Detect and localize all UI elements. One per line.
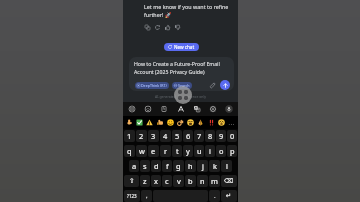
button[interactable]: Search	[172, 82, 192, 89]
staticText: t	[176, 146, 179, 156]
button[interactable]: Settings	[208, 104, 218, 114]
button[interactable]: y	[183, 145, 193, 157]
staticText: ↵	[226, 192, 232, 200]
button[interactable]: m	[209, 175, 220, 187]
button[interactable]: 2	[136, 130, 147, 142]
button[interactable]: u	[194, 145, 204, 157]
button[interactable]: Emoji	[186, 118, 195, 127]
staticText: DeepThink (R1)	[141, 83, 167, 88]
staticText: f	[166, 161, 169, 171]
button[interactable]: Good response	[162, 22, 172, 32]
staticText: x	[154, 176, 158, 186]
button[interactable]: 0	[227, 130, 237, 142]
staticText: q	[127, 146, 132, 156]
staticText: ?123	[127, 193, 137, 199]
button[interactable]: Clipboard	[159, 104, 169, 114]
button[interactable]: f	[162, 160, 172, 172]
button[interactable]: 5	[172, 130, 182, 142]
button[interactable]: c	[162, 175, 172, 187]
button[interactable]: Emoji	[196, 118, 205, 127]
button[interactable]: ↵	[221, 190, 237, 202]
button[interactable]: Copy	[142, 22, 152, 32]
button[interactable]: ,	[141, 190, 152, 202]
button[interactable]: ⇧	[124, 175, 139, 187]
button[interactable]: Emoji	[166, 118, 175, 127]
staticText: 1	[127, 131, 132, 141]
button[interactable]: i	[205, 145, 215, 157]
staticText: Let me know if you want to refine	[144, 3, 229, 10]
staticText: 2	[139, 131, 144, 141]
button[interactable]: Emoji	[125, 118, 134, 127]
button[interactable]: q	[124, 145, 135, 157]
staticText: s	[143, 161, 147, 171]
button[interactable]: Emoji	[217, 118, 226, 127]
button[interactable]: Text editing	[176, 104, 186, 114]
button[interactable]: v	[173, 175, 184, 187]
button[interactable]: 7	[194, 130, 204, 142]
staticText: Account (2025 Privacy Guide)	[134, 68, 205, 75]
staticText: m	[211, 176, 218, 186]
staticText: b	[188, 176, 193, 186]
button[interactable]: d	[151, 160, 161, 172]
button[interactable]: r	[160, 145, 171, 157]
button[interactable]: g	[173, 160, 184, 172]
button[interactable]: Regenerate	[152, 22, 162, 32]
button[interactable]: .	[209, 190, 220, 202]
button[interactable]: o	[216, 145, 226, 157]
button[interactable]: 8	[205, 130, 215, 142]
staticText: p	[230, 146, 235, 156]
button[interactable]: w	[136, 145, 147, 157]
staticText: i	[209, 146, 211, 156]
button[interactable]: New chat	[164, 43, 199, 51]
staticText: n	[200, 176, 205, 186]
button[interactable]: x	[151, 175, 161, 187]
button[interactable]: b	[185, 175, 196, 187]
button[interactable]: n	[197, 175, 208, 187]
staticText: u	[197, 146, 202, 156]
button[interactable]: Emoji	[135, 118, 144, 127]
button[interactable]: 1	[124, 130, 135, 142]
staticText: l	[226, 161, 228, 171]
staticText: c	[165, 176, 169, 186]
button[interactable]: a	[129, 160, 139, 172]
staticText: 4	[163, 131, 168, 141]
staticText: 3	[151, 131, 156, 141]
button[interactable]: Translate	[192, 104, 202, 114]
button[interactable]: z	[140, 175, 150, 187]
button[interactable]: e	[148, 145, 159, 157]
button[interactable]: Emoji	[176, 118, 185, 127]
button[interactable]: Attach file	[208, 81, 216, 89]
button[interactable]: h	[185, 160, 196, 172]
button[interactable]: Send	[220, 80, 230, 90]
staticText: e	[151, 146, 156, 156]
button[interactable]: 3	[148, 130, 159, 142]
staticText: r	[164, 146, 168, 156]
button[interactable]: t	[172, 145, 182, 157]
staticText: o	[219, 146, 224, 156]
button[interactable]: 9	[216, 130, 226, 142]
button[interactable]: Stickers	[143, 104, 153, 114]
button[interactable]: ⌫	[221, 175, 237, 187]
staticText: 0	[230, 131, 235, 141]
button[interactable]: Emoji	[145, 118, 154, 127]
staticText: AI-generated, for reference only	[155, 94, 206, 99]
staticText: 5	[175, 131, 180, 141]
button[interactable]: ?123	[124, 190, 140, 202]
button[interactable]: Bad response	[172, 22, 182, 32]
staticText: 6	[186, 131, 191, 141]
button[interactable]: Voice input	[224, 104, 234, 114]
button[interactable]: 6	[183, 130, 193, 142]
button[interactable]: p	[227, 145, 237, 157]
button[interactable]: j	[197, 160, 208, 172]
button[interactable]: Emoji	[156, 118, 165, 127]
staticText: k	[213, 161, 217, 171]
button[interactable]: l	[221, 160, 232, 172]
button[interactable]: s	[140, 160, 150, 172]
button[interactable]: More emoji	[227, 119, 235, 127]
button[interactable]: DeepThink (R1)	[135, 82, 169, 89]
button[interactable]: k	[209, 160, 220, 172]
button[interactable]: Apps	[127, 104, 137, 114]
button[interactable]: 4	[160, 130, 171, 142]
button[interactable]: Emoji	[207, 118, 216, 127]
